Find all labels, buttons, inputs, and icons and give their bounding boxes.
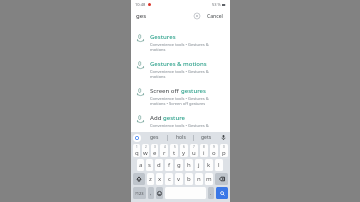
button[interactable]: Voice input — [219, 133, 228, 142]
staticText: g — [177, 161, 181, 169]
staticText: Convenience tools • Gestures & motions •… — [150, 123, 225, 128]
staticText: a — [139, 161, 143, 169]
staticText: w — [143, 149, 148, 157]
staticText: 8 — [203, 145, 205, 149]
staticText: ges — [150, 134, 159, 141]
staticText: gets — [201, 134, 212, 141]
button[interactable]: 2 — [142, 144, 149, 157]
staticText: Convenience tools • Gestures & motions — [150, 69, 225, 79]
button[interactable]: d — [155, 159, 163, 171]
staticText: 5 — [174, 145, 176, 149]
staticText: Convenience tools • Gestures & motions — [150, 42, 225, 52]
staticText: 6 — [183, 145, 185, 149]
button[interactable]: k — [205, 159, 213, 171]
button[interactable]: c — [165, 173, 173, 185]
button[interactable]: 3 — [151, 144, 158, 157]
button[interactable]: gets — [194, 132, 219, 143]
staticText: e — [153, 149, 157, 157]
button[interactable]: Gestures — [131, 29, 230, 56]
staticText: d — [157, 161, 161, 169]
button[interactable]: 4 — [160, 144, 168, 157]
staticText: 2 — [145, 145, 147, 149]
staticText: gesture — [163, 114, 186, 122]
staticText: q — [135, 149, 139, 157]
button[interactable]: ges — [141, 132, 167, 143]
button[interactable]: , — [148, 187, 154, 199]
staticText: , — [150, 190, 152, 197]
staticText: ges — [136, 12, 147, 20]
staticText: p — [222, 149, 226, 157]
button[interactable]: ?123 — [133, 187, 146, 199]
button[interactable]: hols — [168, 132, 193, 143]
button[interactable]: . — [208, 187, 214, 199]
button[interactable]: 1 — [133, 144, 140, 157]
button[interactable]: b — [185, 173, 193, 185]
button[interactable]: Backspace — [215, 173, 228, 185]
staticText: Gestures & motions — [150, 60, 207, 68]
staticText: 7 — [193, 145, 195, 149]
staticText: Cancel — [207, 13, 223, 20]
staticText: hols — [176, 134, 186, 141]
staticText: 53 % — [212, 2, 222, 7]
staticText: 0 — [223, 145, 225, 149]
staticText: y — [182, 149, 186, 157]
button[interactable]: m — [205, 173, 213, 185]
button[interactable]: 0 — [220, 144, 228, 157]
staticText: Convenience tools • Gestures & motions •… — [150, 96, 225, 106]
button[interactable]: s — [146, 159, 153, 171]
staticText: 4 — [164, 145, 166, 149]
button[interactable]: g — [175, 159, 183, 171]
staticText: i — [203, 149, 205, 157]
button[interactable]: j — [195, 159, 203, 171]
staticText: j — [198, 161, 200, 169]
button[interactable]: 5 — [170, 144, 178, 157]
staticText: 1 — [136, 145, 138, 149]
staticText: l — [218, 161, 220, 169]
staticText: f — [168, 161, 171, 169]
button[interactable]: Add — [131, 110, 230, 132]
button[interactable]: f — [165, 159, 173, 171]
staticText: Screen off — [150, 87, 181, 95]
staticText: r — [163, 149, 166, 157]
staticText: . — [210, 190, 212, 197]
staticText: 10:48 — [135, 2, 146, 7]
staticText: z — [149, 175, 152, 183]
button[interactable]: h — [185, 159, 193, 171]
staticText: 3 — [154, 145, 156, 149]
button[interactable]: Clear search — [192, 11, 202, 21]
button[interactable]: 9 — [210, 144, 218, 157]
button[interactable]: l — [215, 159, 223, 171]
staticText: t — [173, 149, 176, 157]
staticText: v — [177, 175, 181, 183]
button[interactable]: z — [147, 173, 154, 185]
button[interactable]: 6 — [180, 144, 188, 157]
staticText: x — [158, 175, 162, 183]
staticText: o — [212, 149, 216, 157]
button[interactable]: a — [137, 159, 144, 171]
staticText: s — [148, 161, 151, 169]
staticText: b — [187, 175, 191, 183]
staticText: Gestures — [150, 33, 176, 41]
staticText: m — [206, 175, 212, 183]
staticText: n — [197, 175, 201, 183]
button[interactable]: v — [175, 173, 183, 185]
staticText: c — [168, 175, 171, 183]
button[interactable]: Emoji — [156, 187, 163, 199]
staticText: k — [207, 161, 211, 169]
button[interactable]: 7 — [190, 144, 198, 157]
staticText: Add — [150, 114, 163, 122]
button[interactable]: Google — [133, 134, 141, 142]
button[interactable]: Cancel — [205, 11, 225, 22]
button[interactable]: Search — [216, 187, 228, 199]
staticText: ?123 — [135, 191, 144, 196]
button[interactable]: 8 — [200, 144, 208, 157]
button[interactable]: Gestures & motions — [131, 56, 230, 83]
button[interactable]: Shift — [133, 173, 145, 185]
staticText: u — [192, 149, 196, 157]
button[interactable]: x — [156, 173, 163, 185]
button[interactable]: n — [195, 173, 203, 185]
button[interactable]: Screen off — [131, 83, 230, 110]
staticText: h — [187, 161, 191, 169]
staticText: gestures — [181, 87, 206, 95]
